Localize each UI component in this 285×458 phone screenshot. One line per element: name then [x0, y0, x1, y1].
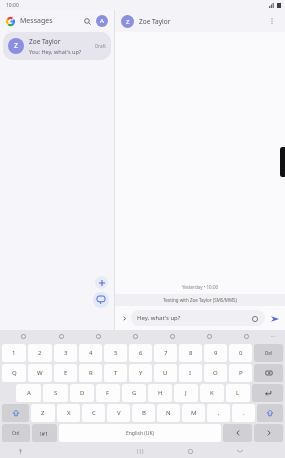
staticText: 1 — [12, 349, 16, 357]
button[interactable]: 0 — [229, 344, 252, 362]
staticText: T — [114, 369, 118, 377]
staticText: . — [243, 409, 245, 417]
button[interactable]: Right — [254, 424, 283, 442]
staticText: Ctrl — [12, 430, 20, 436]
staticText: H — [158, 389, 163, 397]
button[interactable]: Search — [80, 14, 94, 28]
button[interactable]: Tool 4 — [154, 330, 191, 343]
button[interactable]: K — [200, 384, 224, 402]
staticText: 4 — [89, 349, 93, 357]
button[interactable]: Home — [175, 444, 205, 458]
button[interactable]: Voice input — [0, 444, 40, 458]
button[interactable]: B — [132, 404, 155, 422]
button[interactable]: Q — [2, 364, 26, 382]
staticText: F — [106, 389, 110, 397]
button[interactable]: , — [207, 404, 230, 422]
button[interactable]: J — [174, 384, 198, 402]
button[interactable]: 3 — [54, 344, 77, 362]
button[interactable]: Tool 2 — [80, 330, 117, 343]
button[interactable]: More options — [265, 14, 279, 28]
button[interactable]: O — [204, 364, 227, 382]
button[interactable]: Hide keyboard — [225, 444, 255, 458]
button[interactable]: New — [95, 276, 108, 289]
button[interactable]: Start chat — [93, 292, 109, 308]
staticText: 7 — [164, 349, 168, 357]
button[interactable]: Tool 6 — [228, 330, 265, 343]
button[interactable]: I — [179, 364, 202, 382]
staticText: Y — [139, 369, 143, 377]
button[interactable]: Emoji — [250, 314, 259, 323]
button[interactable]: English (UK) — [59, 424, 221, 442]
button[interactable]: Z — [31, 404, 55, 422]
staticText: , — [218, 409, 220, 417]
button[interactable]: Del — [254, 344, 283, 362]
staticText: E — [64, 369, 68, 377]
button[interactable]: M — [182, 404, 205, 422]
staticText: C — [92, 409, 96, 417]
button[interactable]: Account — [96, 15, 108, 27]
button[interactable]: !#1 — [32, 424, 57, 442]
button[interactable]: Enter — [252, 384, 283, 402]
staticText: 3 — [64, 349, 68, 357]
button[interactable]: . — [232, 404, 255, 422]
button[interactable]: W — [28, 364, 52, 382]
button[interactable]: Hey, what's up? — [131, 310, 265, 326]
staticText: Z — [14, 41, 19, 51]
staticText: P — [239, 369, 243, 377]
button[interactable]: H — [148, 384, 172, 402]
button[interactable]: 7 — [154, 344, 177, 362]
button[interactable]: 1 — [2, 344, 26, 362]
button[interactable]: Tool 1 — [42, 330, 80, 343]
button[interactable]: Tool 0 — [4, 330, 42, 343]
staticText: 8 — [189, 349, 193, 357]
button[interactable]: Z — [3, 32, 111, 60]
button[interactable]: Ctrl — [2, 424, 30, 442]
button[interactable]: Tool 5 — [191, 330, 228, 343]
button[interactable]: A — [16, 384, 41, 402]
button[interactable]: 4 — [79, 344, 102, 362]
button[interactable]: Y — [129, 364, 152, 382]
button[interactable]: 2 — [28, 344, 52, 362]
staticText: U — [163, 369, 168, 377]
staticText: N — [166, 409, 171, 417]
staticText: R — [89, 369, 93, 377]
button[interactable]: S — [43, 384, 68, 402]
button[interactable]: Shift — [2, 404, 29, 422]
staticText: I — [189, 369, 192, 377]
staticText: Zoe Taylor — [29, 37, 61, 46]
staticText: Hey, what's up? — [137, 314, 250, 322]
button[interactable]: N — [157, 404, 180, 422]
button[interactable]: 6 — [129, 344, 152, 362]
button[interactable]: Left — [223, 424, 252, 442]
button[interactable]: Shift right — [257, 404, 283, 422]
button[interactable]: Recents — [125, 444, 155, 458]
button[interactable]: R — [79, 364, 102, 382]
staticText: Yesterday • 10:00 — [115, 284, 285, 290]
button[interactable]: Tool 3 — [117, 330, 154, 343]
button[interactable]: X — [57, 404, 80, 422]
button[interactable]: V — [107, 404, 130, 422]
staticText: X — [67, 409, 71, 417]
button[interactable]: Backspace — [254, 364, 283, 382]
button[interactable]: F — [96, 384, 120, 402]
button[interactable]: P — [229, 364, 252, 382]
staticText: L — [236, 389, 240, 397]
button[interactable]: T — [104, 364, 127, 382]
button[interactable]: E — [54, 364, 77, 382]
button[interactable]: Send — [268, 312, 281, 325]
button[interactable]: 5 — [104, 344, 127, 362]
staticText: English (UK) — [126, 430, 155, 437]
button[interactable]: Expand — [119, 313, 129, 323]
staticText: 6 — [139, 349, 143, 357]
button[interactable]: D — [70, 384, 94, 402]
button[interactable]: L — [226, 384, 250, 402]
button[interactable]: U — [154, 364, 177, 382]
button[interactable]: More tools — [265, 330, 281, 343]
button[interactable]: C — [82, 404, 105, 422]
staticText: Z — [41, 409, 45, 417]
staticText: K — [210, 389, 214, 397]
button[interactable]: 9 — [204, 344, 227, 362]
button[interactable]: 8 — [179, 344, 202, 362]
button[interactable]: G — [122, 384, 146, 402]
button[interactable]: Side panel — [280, 147, 285, 177]
